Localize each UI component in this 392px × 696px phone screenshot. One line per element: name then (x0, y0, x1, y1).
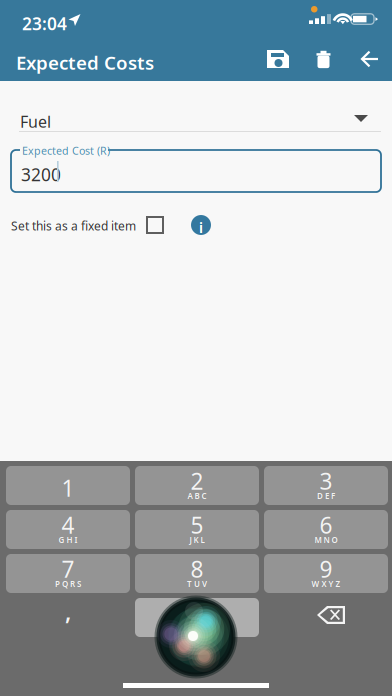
staticText: 1 (61, 473, 74, 503)
staticText: 3200 (21, 163, 61, 186)
button[interactable]: 3200 (11, 150, 381, 192)
staticText: 6 (319, 510, 332, 540)
button[interactable]: Fuel (11, 104, 383, 138)
button[interactable]: Set this as a fixed item (11, 211, 139, 237)
staticText: A B C (187, 490, 206, 501)
button[interactable]: 7 (6, 554, 130, 593)
staticText: Expected Cost (R) (22, 143, 110, 158)
button[interactable]: 8 (135, 554, 259, 593)
staticText: Fuel (20, 111, 51, 132)
staticText: i (199, 219, 203, 237)
staticText: D E F (317, 490, 335, 501)
button[interactable]: 4 (6, 510, 130, 549)
button[interactable]: More information (187, 211, 215, 239)
button[interactable]: Set this as a fixed item (141, 211, 169, 239)
button[interactable]: Save (260, 41, 296, 77)
staticText: M N O (314, 534, 337, 545)
staticText: Expected Costs (16, 50, 154, 75)
button[interactable]: Delete (305, 41, 341, 77)
staticText: W X Y Z (311, 578, 340, 589)
staticText: 23:04 (22, 12, 67, 35)
staticText: P Q R S (55, 578, 81, 589)
staticText: 8 (190, 554, 203, 584)
staticText: 5 (190, 510, 203, 540)
staticText: J K L (189, 534, 204, 545)
staticText: Set this as a fixed item (11, 218, 136, 234)
staticText: , (65, 596, 71, 626)
staticText: T U V (187, 578, 207, 589)
staticText: G H I (58, 534, 77, 545)
button[interactable]: Space (135, 598, 259, 637)
button[interactable]: 6 (264, 510, 388, 549)
staticText: 7 (61, 554, 74, 584)
button[interactable]: Delete (264, 598, 388, 637)
button[interactable]: 5 (135, 510, 259, 549)
staticText: 9 (319, 554, 332, 584)
staticText: 2 (190, 466, 203, 496)
button[interactable]: 9 (264, 554, 388, 593)
button[interactable]: 2 (135, 466, 259, 505)
button[interactable]: 3 (264, 466, 388, 505)
staticText: 4 (61, 510, 74, 540)
button[interactable]: , (6, 598, 130, 637)
button[interactable]: 1 (6, 466, 130, 505)
button[interactable]: Back (351, 41, 387, 77)
staticText: 3 (319, 466, 332, 496)
